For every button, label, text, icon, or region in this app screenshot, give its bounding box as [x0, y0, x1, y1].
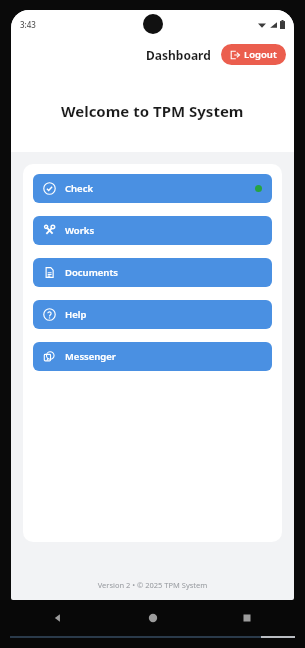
staticText: 3:43: [20, 19, 36, 30]
staticText: Works: [65, 224, 95, 237]
button[interactable]: Logout: [221, 44, 286, 65]
staticText: Logout: [244, 48, 277, 61]
button[interactable]: Works: [33, 216, 272, 245]
button[interactable]: Check: [33, 174, 272, 203]
button[interactable]: Messenger: [33, 342, 272, 371]
staticText: Welcome to TPM System: [61, 101, 244, 121]
staticText: Help: [65, 308, 87, 321]
button[interactable]: Help: [33, 300, 272, 329]
staticText: Dashboard: [146, 47, 211, 63]
button[interactable]: Home: [145, 610, 161, 626]
staticText: Messenger: [65, 350, 116, 363]
button[interactable]: Recents: [239, 610, 255, 626]
button[interactable]: Documents: [33, 258, 272, 287]
staticText: Documents: [65, 266, 118, 279]
staticText: Version 2 • © 2025 TPM System: [11, 580, 294, 590]
button[interactable]: Back: [50, 610, 66, 626]
staticText: Check: [65, 182, 94, 195]
